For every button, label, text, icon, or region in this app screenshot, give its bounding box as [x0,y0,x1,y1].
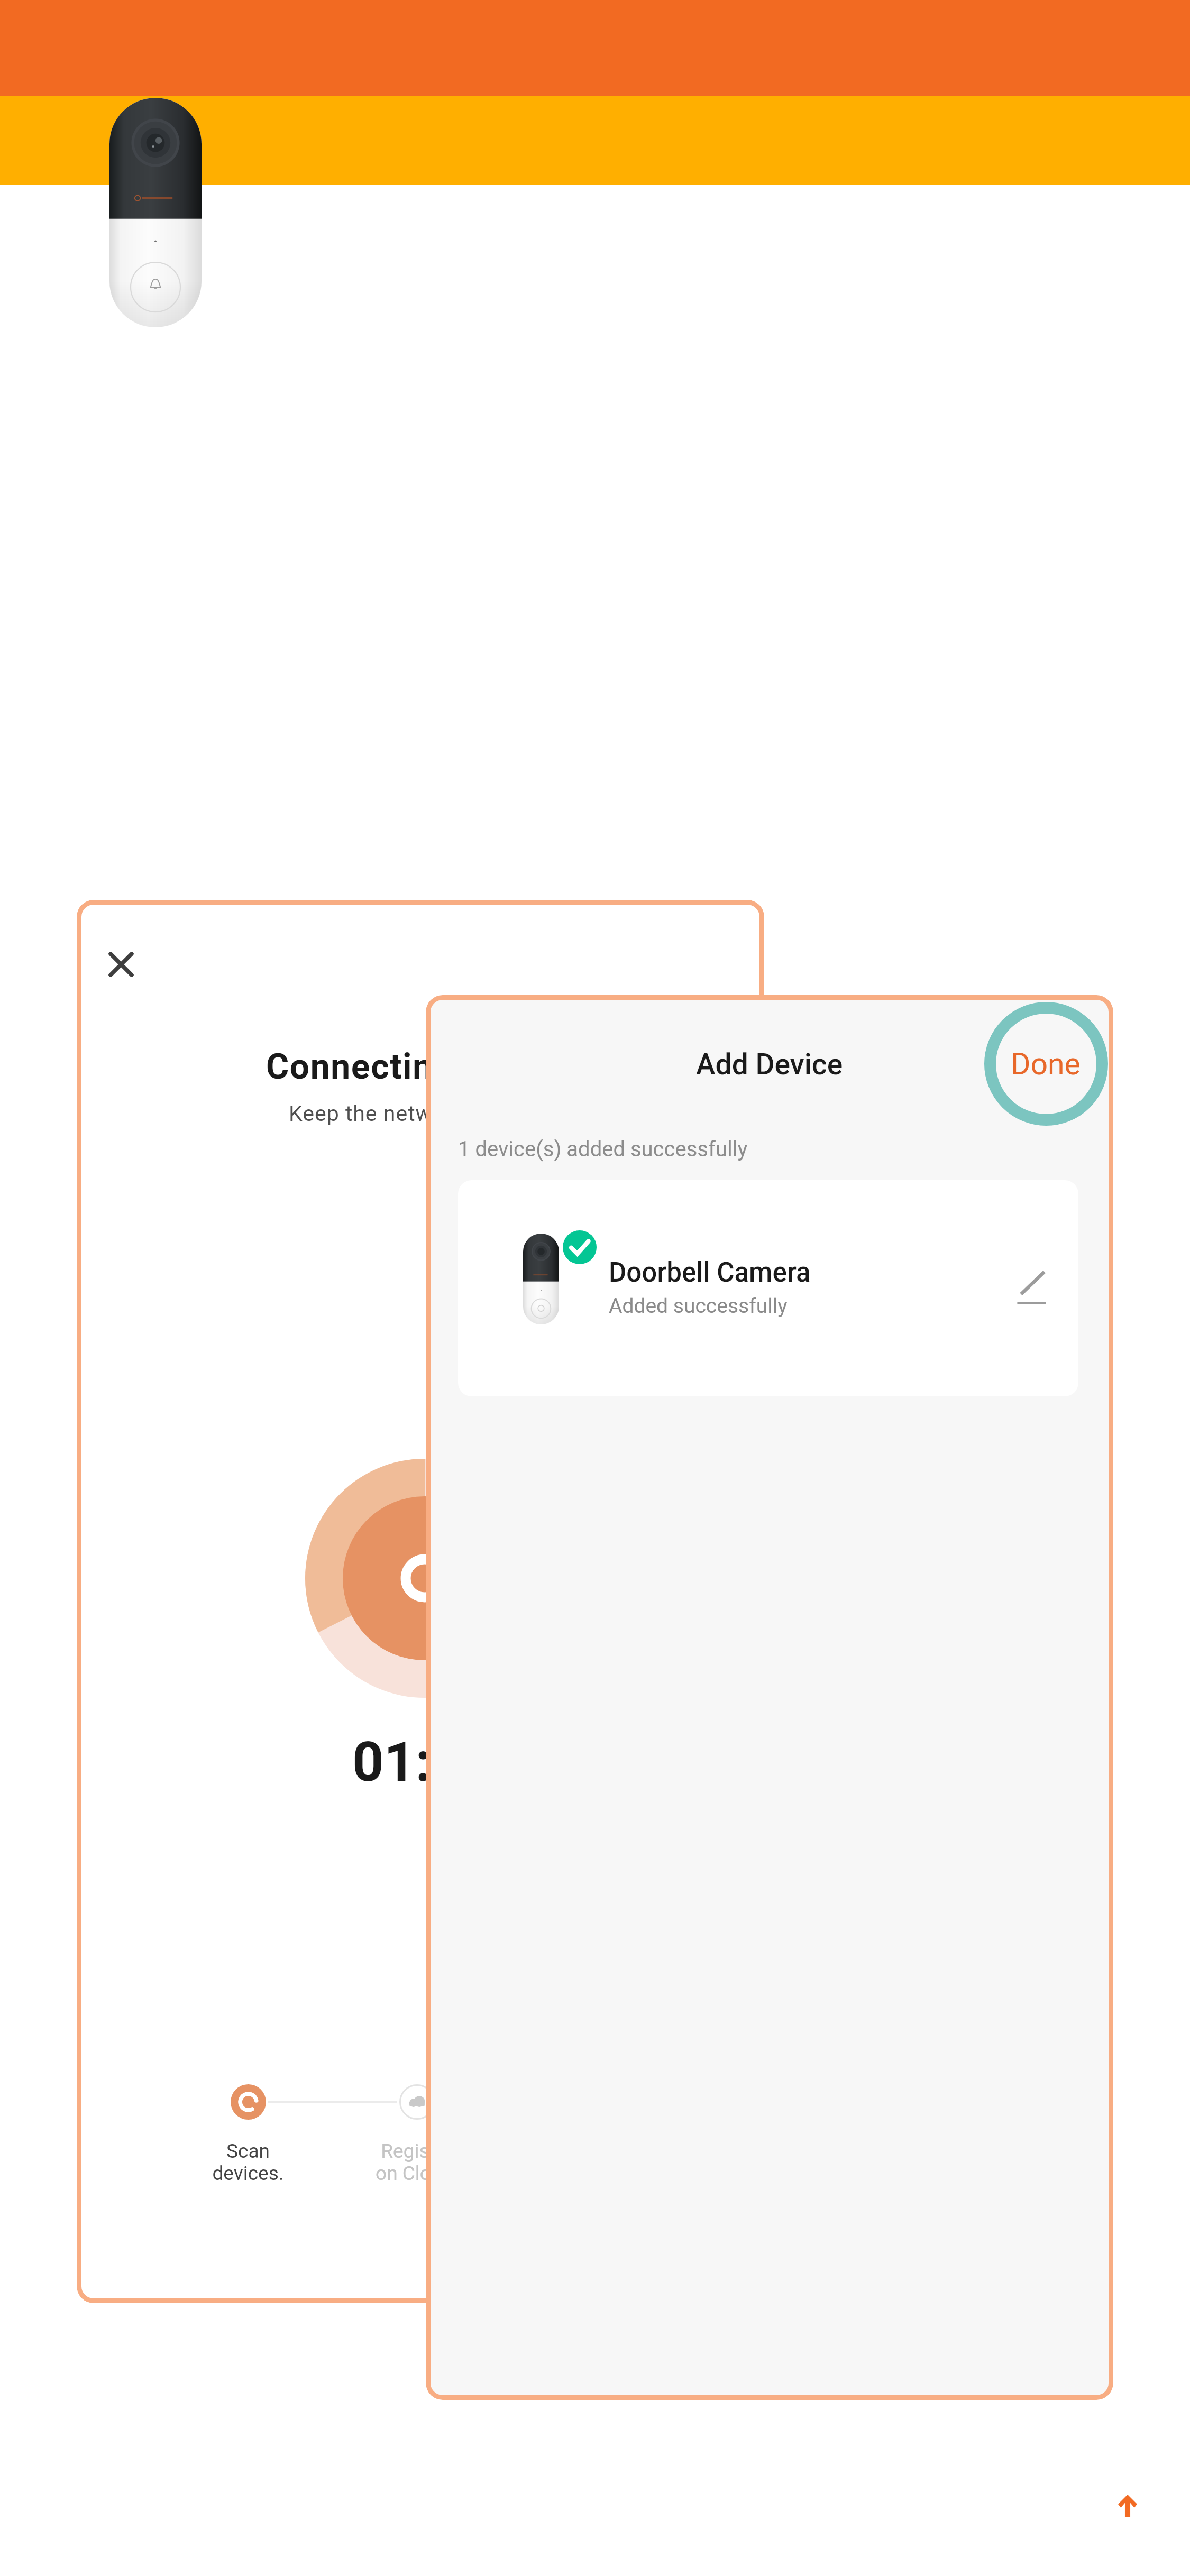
staticText: Add Device [696,1047,843,1081]
button[interactable]: Doorbell Camera [458,1180,1078,1396]
staticText: Connecting... [266,1046,487,1087]
staticText: Doorbell Camera [609,1257,811,1289]
staticText: 1 device(s) added successfully [458,1137,748,1162]
button[interactable]: Done [982,1036,1109,1091]
staticText: Added successfully [609,1294,788,1318]
button[interactable]: Scroll to top [1109,2485,1147,2526]
staticText: Done [1011,1046,1081,1082]
button[interactable]: Close [101,944,141,985]
button[interactable]: Rename device [1010,1264,1057,1312]
staticText: Register on Cloud. [376,2140,458,2185]
staticText: Scan devices. [212,2140,284,2185]
staticText: Keep the network stable. [289,1101,539,1126]
staticText: 01:36 [352,1730,495,1795]
